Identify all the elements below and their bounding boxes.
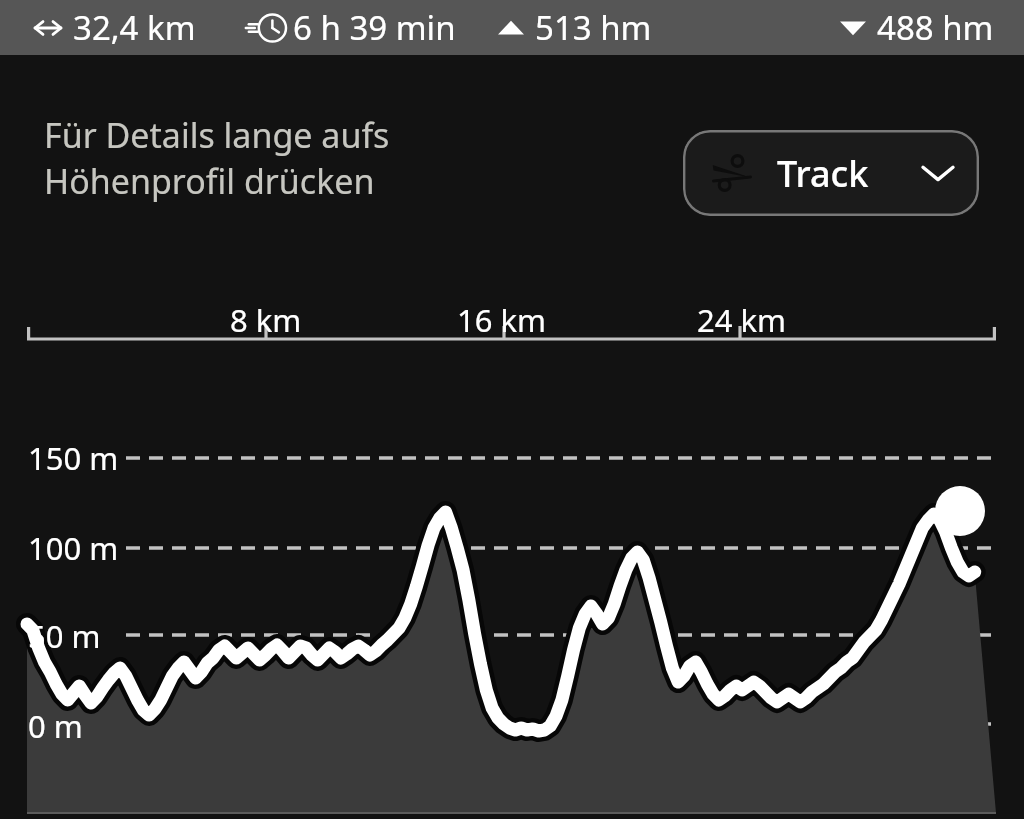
- staticText: 6 h 39 min: [293, 5, 456, 50]
- staticText: 100 m: [28, 527, 119, 569]
- staticText: Für Details lange aufs: [44, 112, 390, 158]
- staticText: Höhenprofil drücken: [44, 158, 375, 204]
- staticText: 0 m: [28, 705, 83, 747]
- button[interactable]: Route type: [683, 130, 979, 216]
- staticText: Track: [777, 149, 869, 198]
- staticText: 488 hm: [877, 5, 994, 50]
- staticText: 32,4 km: [73, 5, 196, 50]
- staticText: 8 km: [230, 299, 302, 341]
- staticText: 150 m: [28, 437, 119, 479]
- staticText: 50 m: [28, 615, 101, 657]
- staticText: 24 km: [697, 299, 787, 341]
- other: Route type: [709, 153, 755, 193]
- staticText: 16 km: [457, 299, 547, 341]
- staticText: 513 hm: [535, 5, 652, 50]
